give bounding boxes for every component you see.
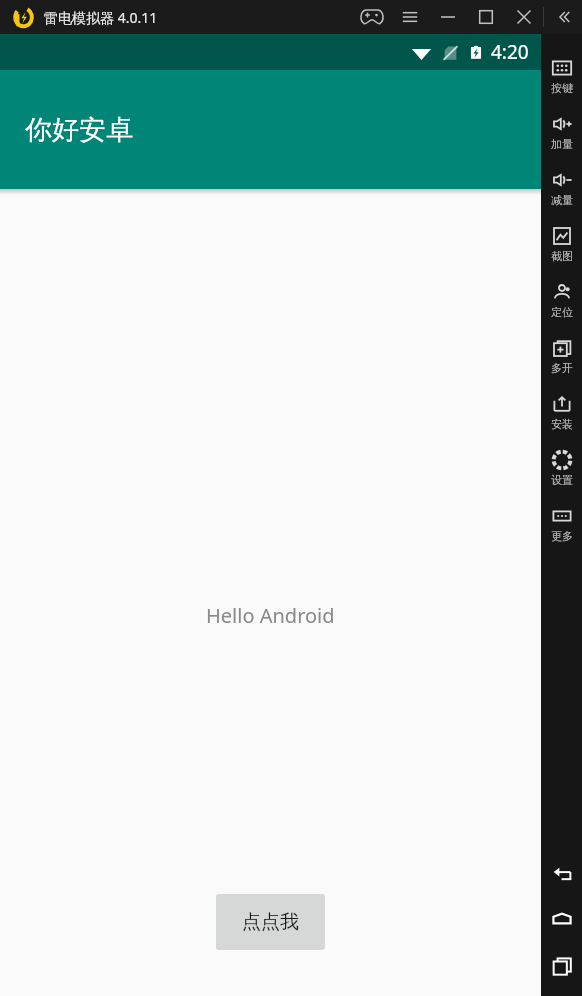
staticText: 雷电模拟器 4.0.11	[44, 8, 158, 27]
button[interactable]: Gamepad	[353, 0, 391, 34]
button[interactable]: Recents	[541, 952, 582, 978]
staticText: 安装	[551, 417, 573, 431]
button[interactable]: 多开	[541, 328, 582, 384]
button[interactable]: Maximize	[467, 0, 505, 34]
button[interactable]: Menu	[391, 0, 429, 34]
button[interactable]: 加量	[541, 104, 582, 160]
staticText: 你好安卓	[25, 113, 133, 147]
button[interactable]: 安装	[541, 384, 582, 440]
button[interactable]: 截图	[541, 216, 582, 272]
button[interactable]: Home	[541, 906, 582, 932]
staticText: 定位	[551, 305, 573, 319]
button[interactable]: 设置	[541, 440, 582, 496]
staticText: 4:20	[491, 39, 529, 65]
button[interactable]: 更多	[541, 496, 582, 552]
button[interactable]: 减量	[541, 160, 582, 216]
button[interactable]: 按键	[541, 48, 582, 104]
staticText: 加量	[551, 137, 573, 151]
staticText: 点点我	[242, 910, 299, 934]
staticText: 设置	[551, 473, 573, 487]
button[interactable]: Back	[541, 860, 582, 886]
staticText: Hello Android	[206, 602, 335, 629]
button[interactable]: 定位	[541, 272, 582, 328]
button[interactable]: Collapse	[544, 0, 582, 34]
staticText: 按键	[551, 81, 573, 95]
staticText: 减量	[551, 193, 573, 207]
button[interactable]: Minimize	[429, 0, 467, 34]
button[interactable]: 点点我	[216, 894, 325, 950]
staticText: 更多	[551, 529, 573, 543]
button[interactable]: Close	[505, 0, 543, 34]
staticText: 多开	[551, 361, 573, 375]
staticText: 截图	[551, 249, 573, 263]
